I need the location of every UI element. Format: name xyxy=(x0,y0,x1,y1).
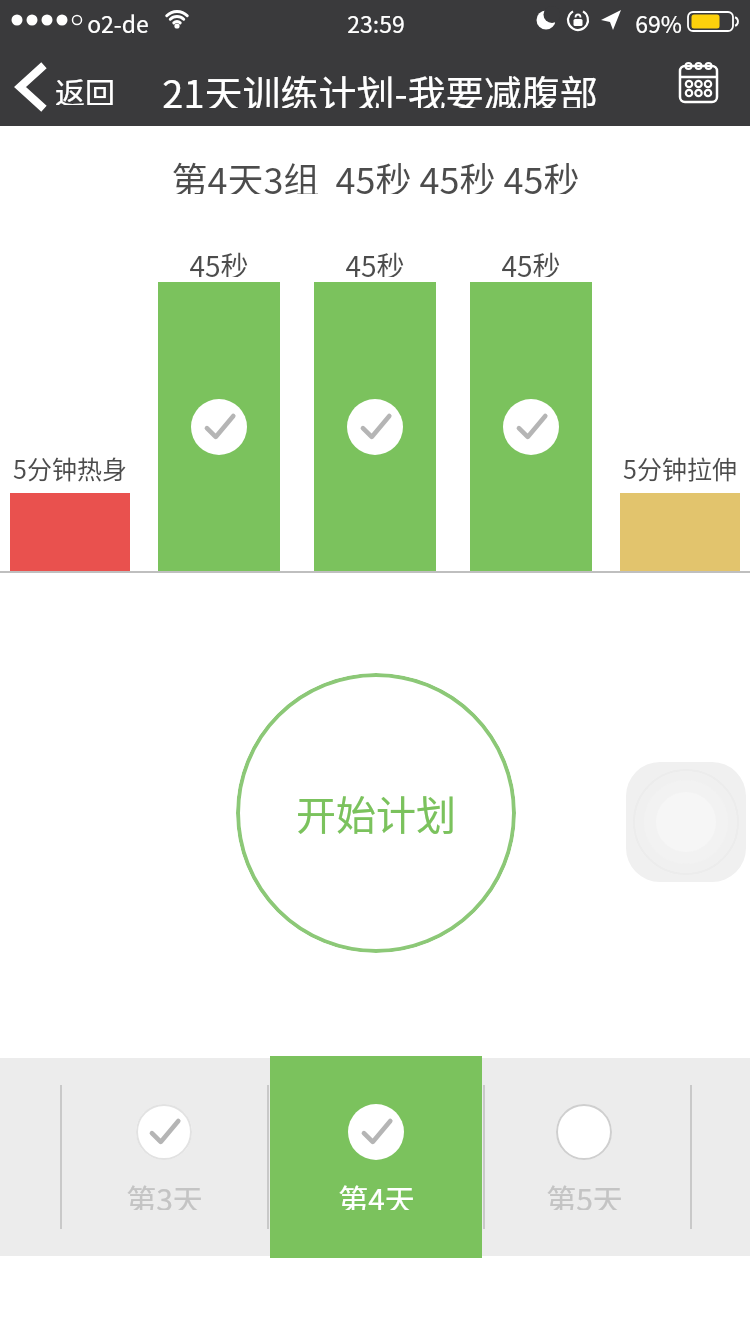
staticText: 45秒 xyxy=(189,245,249,277)
staticText: 5分钟拉伸 xyxy=(623,450,737,482)
staticText: 返回 xyxy=(55,69,115,105)
button[interactable]: 开始计划 xyxy=(236,673,516,953)
button[interactable] xyxy=(485,1058,690,1256)
staticText: 45秒 xyxy=(501,245,561,277)
staticText: 第5天 xyxy=(546,1176,623,1210)
staticText: 45秒 xyxy=(345,245,405,277)
staticText: 69% xyxy=(635,6,682,34)
button[interactable]: 返回 xyxy=(8,58,124,116)
button[interactable] xyxy=(626,762,746,882)
staticText: 21天训练计划-我要减腹部 xyxy=(162,64,598,108)
staticText: o2-de xyxy=(87,6,149,34)
staticText: 第4天3组 45秒 45秒 45秒 xyxy=(171,152,580,194)
button[interactable] xyxy=(270,1056,482,1258)
staticText: 开始计划 xyxy=(296,784,456,842)
button[interactable] xyxy=(62,1058,267,1256)
staticText: 23:59 xyxy=(347,6,405,34)
staticText: 第4天 xyxy=(338,1176,415,1210)
staticText: 第3天 xyxy=(126,1176,203,1210)
staticText: 5分钟热身 xyxy=(13,450,127,482)
button[interactable] xyxy=(668,54,730,112)
